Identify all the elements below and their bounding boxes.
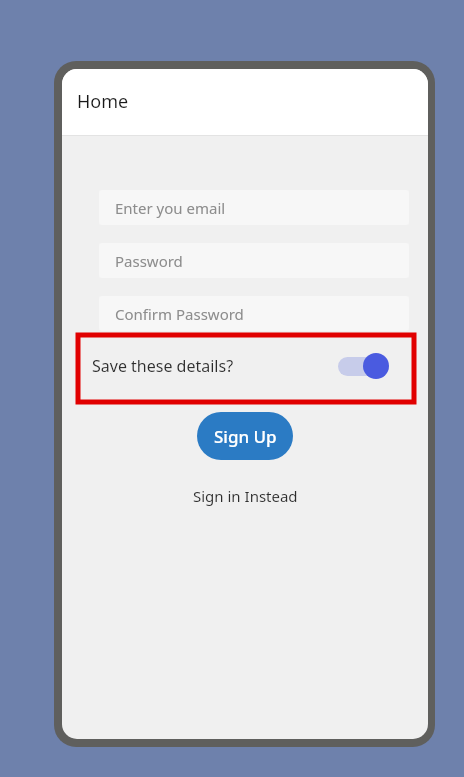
staticText: Sign Up [214, 425, 277, 448]
button[interactable]: Confirm Password [99, 296, 409, 331]
staticText: Enter you email [115, 198, 226, 218]
button[interactable]: Sign in Instead [185, 482, 306, 510]
staticText: Password [115, 251, 183, 271]
other: Save these details toggle [337, 353, 389, 379]
button[interactable]: Sign Up [197, 412, 293, 460]
staticText: Confirm Password [115, 304, 244, 324]
staticText: Home [77, 89, 129, 114]
button[interactable]: Enter you email [99, 190, 409, 225]
staticText: Sign in Instead [193, 486, 298, 506]
staticText: Save these details? [92, 355, 234, 377]
button[interactable]: Save these details? [92, 353, 389, 379]
button[interactable]: Password [99, 243, 409, 278]
